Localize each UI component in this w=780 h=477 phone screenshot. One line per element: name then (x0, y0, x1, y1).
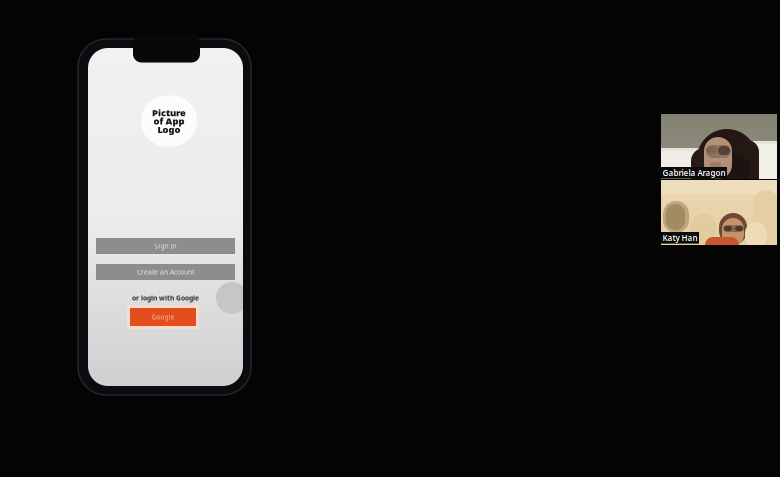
staticText: of App (153, 115, 184, 127)
staticText: or login with Google (132, 294, 199, 302)
button[interactable]: Google (130, 308, 196, 326)
staticText: Sign In (154, 242, 176, 250)
staticText: Picture (152, 106, 186, 119)
staticText: Logo (157, 123, 180, 136)
staticText: Google (151, 313, 174, 321)
staticText: Katy Han (662, 232, 697, 243)
staticText: Create an Account (137, 268, 194, 276)
button[interactable]: Create an Account (96, 264, 235, 280)
staticText: Gabriela Aragon (662, 167, 725, 178)
button[interactable]: Sign In (96, 238, 235, 254)
